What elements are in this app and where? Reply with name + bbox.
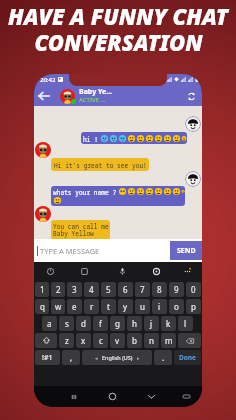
button[interactable]: e	[67, 299, 82, 314]
button[interactable]: z	[59, 333, 74, 348]
button[interactable]: Done	[174, 350, 201, 365]
staticText: d	[81, 318, 86, 329]
button[interactable]: 2	[51, 282, 65, 297]
staticText: o	[174, 301, 179, 312]
button[interactable]: l	[178, 316, 193, 331]
button[interactable]: Recents	[54, 386, 93, 407]
staticText: r	[90, 301, 94, 312]
staticText: h	[132, 318, 137, 329]
staticText: 5	[106, 284, 111, 295]
staticText: .	[162, 352, 165, 363]
button[interactable]: n	[144, 333, 159, 348]
staticText: a	[47, 318, 52, 329]
button[interactable]: 9	[169, 282, 184, 297]
button[interactable]: SEND	[170, 241, 202, 260]
staticText: f	[99, 318, 102, 329]
button[interactable]: ◂	[82, 350, 152, 365]
staticText: s	[65, 318, 69, 329]
staticText: 9	[174, 284, 179, 295]
staticText: TYPE A MESSAGE	[40, 246, 100, 256]
button[interactable]: Refresh	[180, 86, 202, 106]
button[interactable]: Keyboard	[171, 386, 202, 407]
button[interactable]: 4	[84, 282, 99, 297]
button[interactable]: 3	[67, 282, 82, 297]
button[interactable]: Settings	[147, 262, 165, 281]
staticText: whats your name ?	[53, 188, 117, 196]
button[interactable]: v	[110, 333, 125, 348]
button[interactable]: Backspace	[178, 333, 201, 348]
staticText: v	[115, 335, 120, 346]
button[interactable]: 1	[35, 282, 49, 297]
button[interactable]: 0	[186, 282, 201, 297]
button[interactable]: Clock	[41, 262, 59, 281]
staticText: 6	[123, 284, 128, 295]
button[interactable]: c	[93, 333, 108, 348]
button[interactable]: 6	[118, 282, 133, 297]
button[interactable]: Shift	[35, 333, 57, 348]
staticText: q	[40, 301, 45, 312]
button[interactable]: More	[178, 262, 196, 281]
button[interactable]: You can call me	[51, 220, 110, 240]
staticText: Hi it's great to see you!	[54, 161, 147, 169]
staticText: u	[140, 301, 145, 312]
button[interactable]: m	[161, 333, 176, 348]
button[interactable]: o	[169, 299, 184, 314]
button[interactable]: j	[144, 316, 159, 331]
button[interactable]: ,	[62, 350, 80, 365]
staticText: g	[115, 318, 120, 329]
staticText: i	[158, 301, 161, 312]
button[interactable]: .	[154, 350, 172, 365]
button[interactable]: g	[110, 316, 125, 331]
button[interactable]: s	[59, 316, 74, 331]
button[interactable]: whats your name ?	[51, 186, 185, 206]
button[interactable]: k	[161, 316, 176, 331]
staticText: n	[149, 335, 154, 346]
button[interactable]: h	[127, 316, 142, 331]
button[interactable]: 5	[101, 282, 116, 297]
staticText: Done	[179, 353, 196, 362]
staticText: !#1	[42, 353, 53, 363]
staticText: 8	[157, 284, 162, 295]
staticText: x	[81, 335, 86, 346]
button[interactable]: Back	[34, 86, 54, 106]
button[interactable]: 8	[152, 282, 167, 297]
button[interactable]: Voice input	[113, 262, 131, 281]
button[interactable]: a	[42, 316, 57, 331]
staticText: 7	[140, 284, 145, 295]
staticText: hi !	[83, 135, 98, 143]
button[interactable]: b	[127, 333, 142, 348]
staticText: English (US)	[102, 354, 133, 361]
button[interactable]: q	[35, 299, 49, 314]
staticText: ,	[70, 352, 73, 363]
staticText: CONVERSATION	[34, 27, 203, 57]
button[interactable]: Hi it's great to see you!	[51, 158, 149, 171]
staticText: ACTIVE ...	[79, 96, 106, 104]
staticText: y	[123, 301, 128, 312]
button[interactable]: 7	[135, 282, 150, 297]
button[interactable]: Home	[93, 386, 132, 407]
button[interactable]: i	[152, 299, 167, 314]
button[interactable]: t	[101, 299, 116, 314]
staticText: 1	[40, 284, 45, 295]
button[interactable]: d	[76, 316, 91, 331]
staticText: SEND	[177, 246, 196, 256]
button[interactable]: r	[84, 299, 99, 314]
button[interactable]: TYPE A MESSAGE	[34, 239, 170, 262]
staticText: Baby Ye...	[79, 87, 113, 97]
button[interactable]: f	[93, 316, 108, 331]
staticText: You can call me	[53, 222, 109, 230]
button[interactable]: Sticker	[75, 262, 93, 281]
staticText: 4	[89, 284, 94, 295]
button[interactable]: hi !	[81, 132, 187, 144]
button[interactable]: !#1	[35, 350, 60, 365]
button[interactable]: y	[118, 299, 133, 314]
staticText: c	[99, 335, 103, 346]
staticText: p	[191, 301, 196, 312]
staticText: 3	[72, 284, 77, 295]
button[interactable]: u	[135, 299, 150, 314]
button[interactable]: x	[76, 333, 91, 348]
button[interactable]: Back	[132, 386, 171, 407]
button[interactable]: p	[186, 299, 201, 314]
button[interactable]: w	[51, 299, 65, 314]
staticText: t	[107, 301, 110, 312]
